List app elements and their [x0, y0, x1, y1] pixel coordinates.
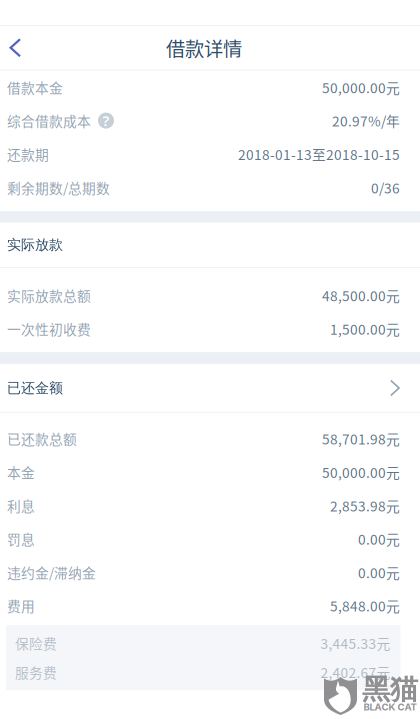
button[interactable]: 综合借款成本说明 — [98, 113, 114, 129]
staticText: 48,500.00元 — [322, 285, 400, 305]
staticText: 利息 — [7, 495, 35, 515]
staticText: 本金 — [7, 462, 35, 482]
button[interactable]: 已还金额 — [0, 364, 420, 412]
staticText: ? — [102, 111, 109, 131]
staticText: 实际放款总额 — [7, 285, 91, 305]
staticText: 剩余期数/总期数 — [7, 177, 110, 197]
staticText: 0/36 — [371, 177, 400, 197]
staticText: BLACK CAT — [363, 701, 416, 713]
staticText: 还款期 — [7, 144, 49, 164]
staticText: 1,500.00元 — [330, 319, 400, 339]
staticText: 0.00元 — [358, 562, 400, 582]
staticText: 借款本金 — [7, 77, 63, 97]
staticText: 已还金额 — [7, 379, 63, 397]
staticText: 已还款总额 — [7, 429, 77, 449]
staticText: 50,000.00元 — [322, 77, 400, 97]
button[interactable]: 返回 — [0, 26, 31, 69]
staticText: 一次性初收费 — [7, 319, 91, 339]
staticText: 借款详情 — [166, 34, 242, 62]
staticText: 综合借款成本 — [7, 111, 91, 131]
staticText: 保险费 — [15, 633, 57, 653]
staticText: 2,402.67元 — [320, 662, 390, 682]
staticText: 3,445.33元 — [320, 633, 390, 653]
staticText: 2018-01-13至2018-10-15 — [238, 144, 400, 164]
staticText: 2,853.98元 — [330, 495, 400, 515]
staticText: 20.97%/年 — [332, 111, 400, 131]
staticText: 5,848.00元 — [330, 596, 400, 616]
staticText: 服务费 — [15, 662, 57, 682]
staticText: 实际放款 — [7, 236, 63, 254]
staticText: 黑猫 — [362, 672, 418, 707]
staticText: 58,701.98元 — [322, 429, 400, 449]
staticText: 50,000.00元 — [322, 462, 400, 482]
staticText: 违约金/滞纳金 — [7, 562, 96, 582]
staticText: 罚息 — [7, 529, 35, 549]
staticText: 0.00元 — [358, 529, 400, 549]
staticText: 费用 — [7, 596, 35, 616]
